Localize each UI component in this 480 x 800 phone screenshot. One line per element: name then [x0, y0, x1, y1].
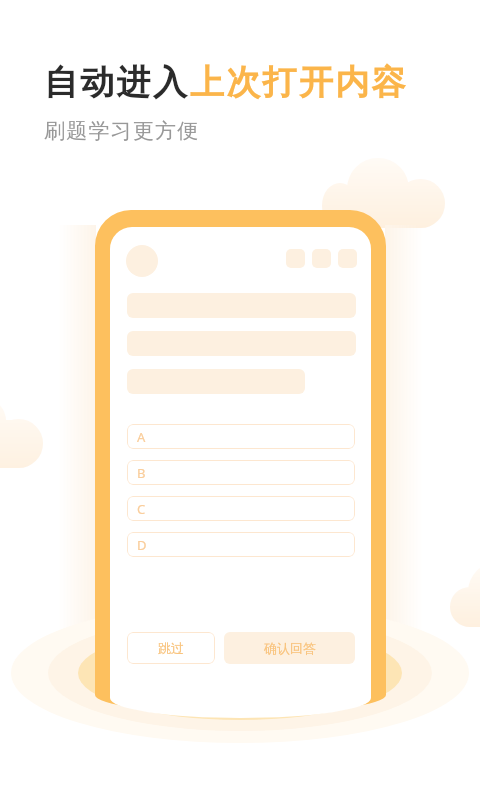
staticText: B	[137, 464, 146, 482]
button[interactable]: D	[127, 532, 355, 557]
button[interactable]: 确认回答	[224, 632, 355, 664]
button[interactable]: A	[127, 424, 355, 449]
staticText: 刷题学习更方便	[44, 118, 200, 144]
staticText: 跳过	[158, 640, 184, 656]
staticText: 自动进入	[44, 61, 190, 104]
button[interactable]: C	[127, 496, 355, 521]
staticText: 确认回答	[264, 640, 316, 656]
button[interactable]: 跳过	[127, 632, 215, 664]
button[interactable]: B	[127, 460, 355, 485]
staticText: D	[137, 536, 147, 554]
staticText: A	[137, 428, 146, 446]
staticText: C	[137, 500, 146, 518]
staticText: 上次打开内容	[190, 61, 408, 104]
